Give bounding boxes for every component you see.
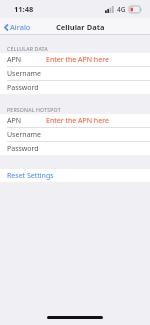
staticText: Enter the APN here <box>46 116 109 126</box>
staticText: APN <box>7 55 22 65</box>
staticText: Enter the APN here <box>46 55 109 65</box>
staticText: APN <box>7 116 22 126</box>
staticText: Password <box>7 83 39 93</box>
staticText: Username <box>7 69 42 79</box>
button[interactable]: Username <box>0 128 150 141</box>
button[interactable]: Username <box>0 67 150 80</box>
staticText: 11:48 <box>14 4 34 14</box>
button[interactable]: Reset Settings <box>0 169 150 182</box>
button[interactable]: Password <box>0 142 150 155</box>
staticText: Cellular Data <box>56 22 105 32</box>
staticText: CELLULAR DATA <box>7 45 48 52</box>
staticText: Username <box>7 130 42 140</box>
button[interactable]: Airalo <box>0 19 37 35</box>
staticText: 4G <box>117 5 126 14</box>
staticText: PERSONAL HOTSPOT <box>7 106 61 113</box>
staticText: Reset Settings <box>7 171 54 181</box>
staticText: Password <box>7 144 39 154</box>
button[interactable]: Password <box>0 81 150 94</box>
button[interactable]: APN <box>0 53 150 66</box>
staticText: Airalo <box>10 22 31 32</box>
button[interactable]: APN <box>0 114 150 127</box>
